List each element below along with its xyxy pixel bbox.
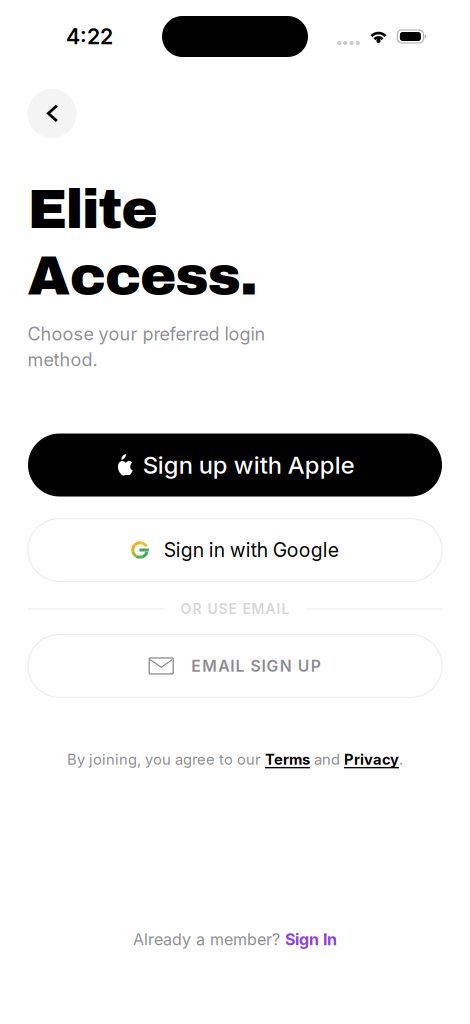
button[interactable]: Privacy (344, 750, 399, 768)
staticText: Terms (265, 750, 310, 768)
staticText: Choose your preferred login (27, 323, 265, 345)
staticText: By joining, you agree to our (67, 750, 265, 768)
staticText: method. (27, 349, 97, 370)
staticText: Sign In (285, 930, 337, 949)
staticText: . (399, 750, 403, 768)
button[interactable]: EMAIL SIGN UP (28, 634, 442, 697)
staticText: EMAIL SIGN UP (191, 656, 321, 675)
staticText: Already a member? (133, 930, 280, 949)
staticText: Privacy (344, 750, 399, 768)
staticText: Sign up with Apple (143, 450, 355, 479)
button[interactable]: Back (27, 89, 76, 138)
button[interactable]: Sign In (285, 930, 337, 949)
button[interactable]: Sign up with Apple (28, 433, 442, 496)
staticText: Sign in with Google (164, 538, 339, 562)
staticText: 4:22 (66, 24, 113, 49)
staticText: and (310, 750, 344, 768)
staticText: Access. (27, 246, 258, 306)
button[interactable]: Sign in with Google (28, 518, 442, 581)
staticText: Elite (27, 180, 157, 239)
staticText: OR USE EMAIL (180, 600, 289, 617)
button[interactable]: Terms (265, 750, 310, 768)
